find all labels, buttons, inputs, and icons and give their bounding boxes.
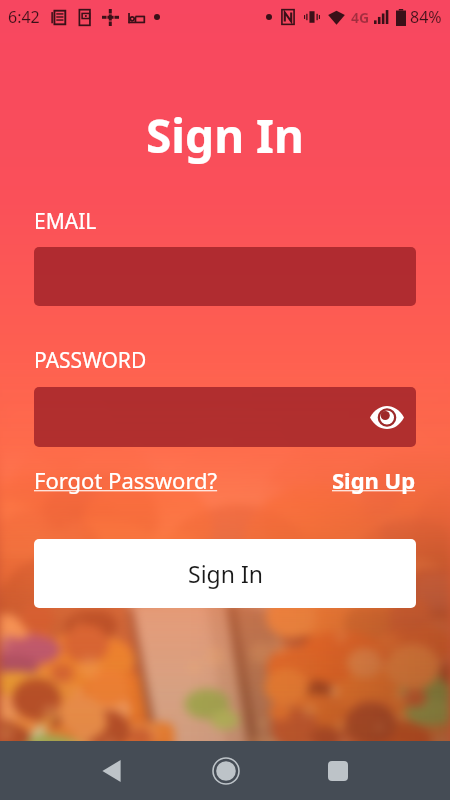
button[interactable]: Recent apps [314, 747, 362, 795]
staticText: Sign In [188, 558, 263, 589]
staticText: EMAIL [34, 207, 97, 236]
button[interactable]: Sign Up [332, 465, 416, 495]
button[interactable]: Show password [34, 387, 416, 447]
button[interactable]: Back [87, 747, 135, 795]
staticText: Sign In [146, 104, 304, 167]
button[interactable]: Show password [358, 387, 416, 447]
staticText: 84% [410, 6, 442, 28]
staticText: PASSWORD [34, 346, 147, 375]
staticText: 4G [351, 8, 370, 27]
button[interactable]: Sign In [34, 539, 416, 608]
staticText: 6:42 [8, 6, 40, 28]
staticText: Forgot Password? [34, 465, 218, 495]
button[interactable]: Home [202, 747, 250, 795]
staticText: Sign Up [332, 465, 416, 495]
button[interactable]: Forgot Password? [34, 465, 218, 495]
